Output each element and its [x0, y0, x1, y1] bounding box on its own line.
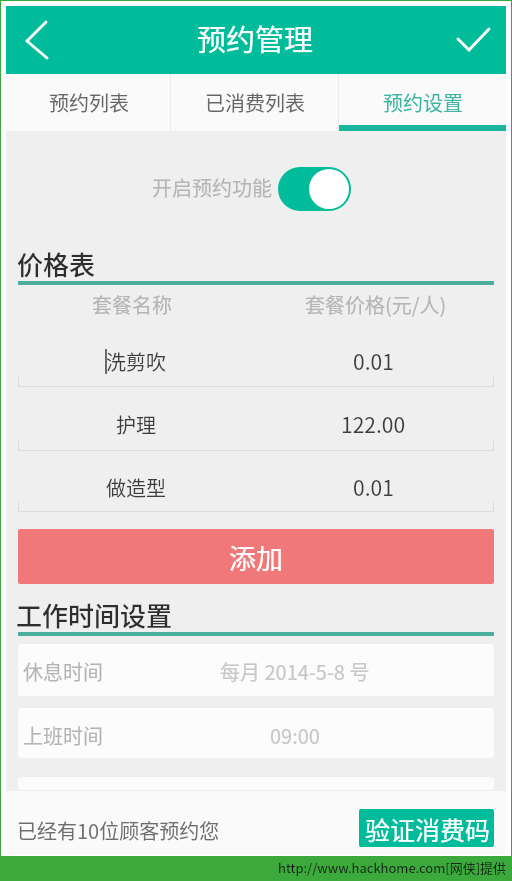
staticText: 护理 — [116, 410, 156, 439]
button[interactable]: 验证消费码 — [359, 809, 494, 847]
staticText: 价格表 — [17, 245, 96, 283]
staticText: 添加 — [229, 538, 283, 577]
staticText: 122.00 — [341, 409, 406, 439]
staticText: 套餐价格(元/人) — [305, 290, 447, 319]
button[interactable]: 休息时间 — [18, 644, 494, 696]
button[interactable]: 添加 — [18, 529, 494, 584]
staticText: 预约管理 — [197, 17, 314, 59]
staticText: 0.01 — [353, 472, 394, 502]
button[interactable] — [278, 167, 351, 211]
staticText: 工作时间设置 — [16, 596, 173, 634]
staticText: 0.01 — [353, 346, 394, 376]
staticText: 套餐名称 — [92, 290, 172, 319]
staticText: 开启预约功能 — [152, 173, 272, 202]
staticText: 已经有10位顾客预约您 — [17, 816, 220, 845]
button[interactable] — [171, 74, 338, 131]
button[interactable]: 已经有10位顾客预约您 — [6, 791, 506, 855]
staticText: 做造型 — [106, 473, 166, 502]
staticText: 上班时间 — [23, 721, 103, 750]
button[interactable]: 护理 — [18, 388, 494, 451]
staticText: 预约设置 — [383, 88, 463, 117]
button[interactable]: 洗剪吹 — [18, 324, 494, 387]
staticText: 已消费列表 — [205, 88, 305, 117]
button[interactable]: Confirm — [446, 10, 506, 70]
staticText: 洗剪吹 — [106, 347, 166, 376]
staticText: 预约列表 — [49, 88, 129, 117]
staticText: 休息时间 — [23, 657, 103, 686]
staticText: http://www.hackhome.com[网侠]提供 — [278, 858, 507, 877]
button[interactable] — [6, 74, 170, 131]
button[interactable]: 做造型 — [18, 449, 494, 512]
button[interactable] — [339, 74, 506, 131]
staticText: 每月 2014-5-8 号 — [220, 657, 370, 686]
button[interactable]: Back — [14, 10, 74, 70]
staticText: 验证消费码 — [365, 811, 491, 847]
staticText: 09:00 — [270, 721, 320, 750]
button[interactable]: 上班时间 — [18, 708, 494, 758]
